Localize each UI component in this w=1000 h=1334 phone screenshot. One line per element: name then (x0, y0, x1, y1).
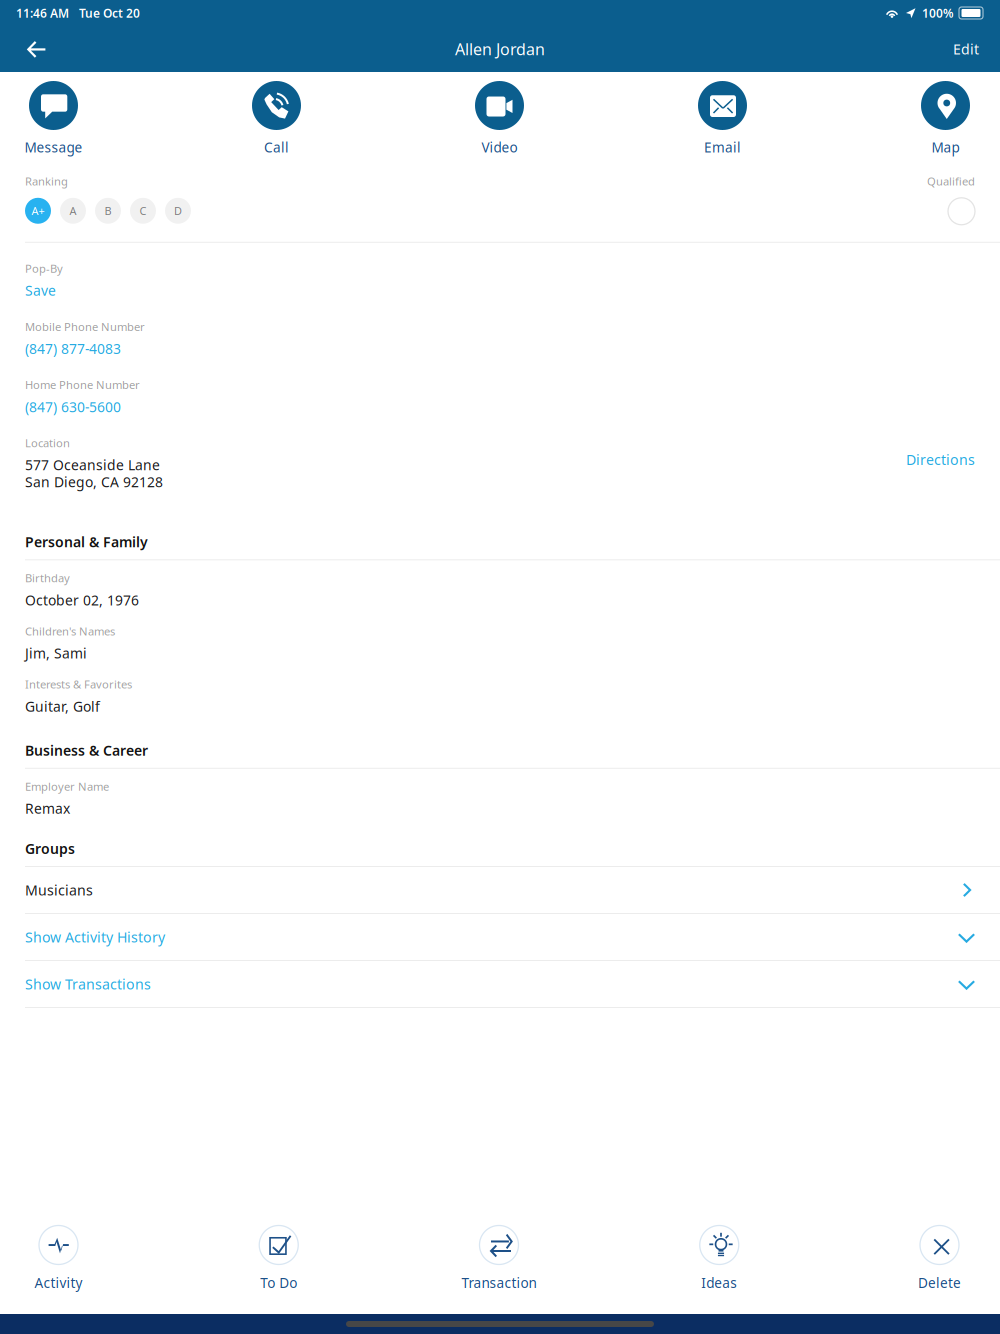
staticText: October 02, 1976 (25, 591, 139, 609)
staticText: Edit (953, 39, 979, 59)
staticText: Jim, Sami (25, 644, 87, 663)
staticText: Email (704, 138, 741, 156)
staticText: Call (264, 138, 289, 156)
button[interactable]: Map (921, 81, 970, 156)
staticText: Business & Career (25, 741, 148, 760)
button[interactable]: A+ (25, 198, 51, 224)
staticText: 100% (922, 5, 954, 21)
button[interactable]: A (60, 198, 86, 224)
staticText: Directions (906, 450, 975, 469)
staticText: A (69, 203, 76, 218)
staticText: To Do (260, 1273, 297, 1292)
staticText: Map (931, 138, 959, 156)
staticText: San Diego, CA 92128 (25, 472, 163, 491)
staticText: Musicians (25, 880, 93, 900)
button[interactable]: D (165, 198, 191, 224)
staticText: Delete (918, 1273, 961, 1292)
button[interactable]: To Do (259, 1225, 298, 1292)
staticText: Location (25, 435, 70, 450)
staticText: A+ (31, 203, 44, 218)
button[interactable]: B (95, 198, 121, 224)
button[interactable]: Directions (906, 450, 975, 491)
staticText: Allen Jordan (455, 38, 545, 60)
staticText: Ideas (701, 1273, 737, 1292)
staticText: Mobile Phone Number (25, 319, 145, 334)
button[interactable]: Video (475, 81, 524, 156)
staticText: Home Phone Number (25, 377, 140, 392)
staticText: Show Transactions (25, 974, 151, 994)
staticText: Remax (25, 799, 70, 818)
button[interactable]: Musicians (0, 867, 1000, 913)
button[interactable]: Call (252, 81, 301, 156)
staticText: Birthday (25, 570, 70, 586)
staticText: (847) 877-4083 (25, 339, 121, 358)
staticText: 577 Oceanside Lane (25, 455, 160, 474)
staticText: B (104, 203, 111, 218)
staticText: Guitar, Golf (25, 697, 100, 716)
staticText: Tue Oct 20 (79, 5, 140, 21)
staticText: Activity (34, 1273, 82, 1292)
staticText: Save (25, 281, 56, 300)
staticText: Ranking (25, 173, 68, 189)
button[interactable]: Pop-By (25, 261, 975, 300)
staticText: Message (24, 138, 82, 156)
staticText: (847) 630-5600 (25, 397, 121, 416)
button[interactable]: Delete (918, 1225, 961, 1292)
staticText: Transaction (461, 1273, 536, 1292)
button[interactable]: C (130, 198, 156, 224)
staticText: 11:46 AM (16, 5, 69, 21)
button[interactable]: Back (13, 27, 60, 71)
staticText: Personal & Family (25, 532, 148, 551)
button[interactable]: Activity (34, 1225, 82, 1292)
button[interactable]: Home Phone Number (25, 377, 975, 416)
button[interactable]: Message (24, 81, 82, 156)
button[interactable]: Ideas (700, 1225, 739, 1292)
staticText: Pop-By (25, 261, 63, 276)
staticText: Show Activity History (25, 927, 165, 947)
staticText: Interests & Favorites (25, 677, 132, 692)
staticText: Video (481, 138, 517, 156)
staticText: D (174, 203, 182, 218)
button[interactable]: Mobile Phone Number (25, 319, 975, 358)
button[interactable]: Show Transactions (0, 961, 1000, 1007)
staticText: Qualified (927, 173, 975, 189)
staticText: Groups (25, 839, 75, 858)
button[interactable]: Show Activity History (0, 914, 1000, 960)
staticText: Employer Name (25, 779, 109, 794)
button[interactable]: Transaction (461, 1225, 536, 1292)
button[interactable]: Email (698, 81, 747, 156)
button[interactable]: Qualified (948, 198, 975, 225)
button[interactable]: Edit (945, 27, 987, 71)
staticText: Children's Names (25, 623, 115, 639)
staticText: C (139, 203, 146, 218)
